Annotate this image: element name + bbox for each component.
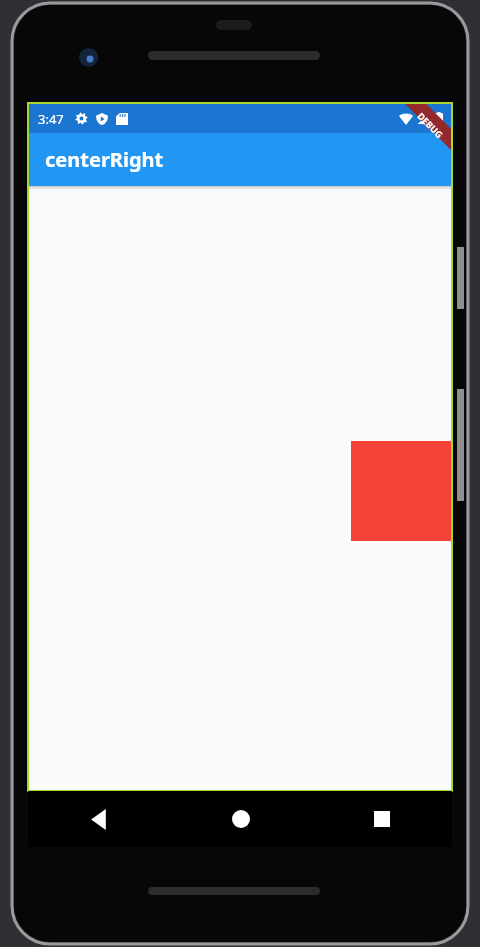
staticText: 3:47: [38, 110, 64, 128]
staticText: centerRight: [45, 146, 164, 173]
staticText: DEBUG: [415, 110, 446, 140]
button[interactable]: Home: [170, 791, 311, 847]
button[interactable]: Recents: [311, 791, 452, 847]
button[interactable]: Back: [28, 791, 170, 847]
